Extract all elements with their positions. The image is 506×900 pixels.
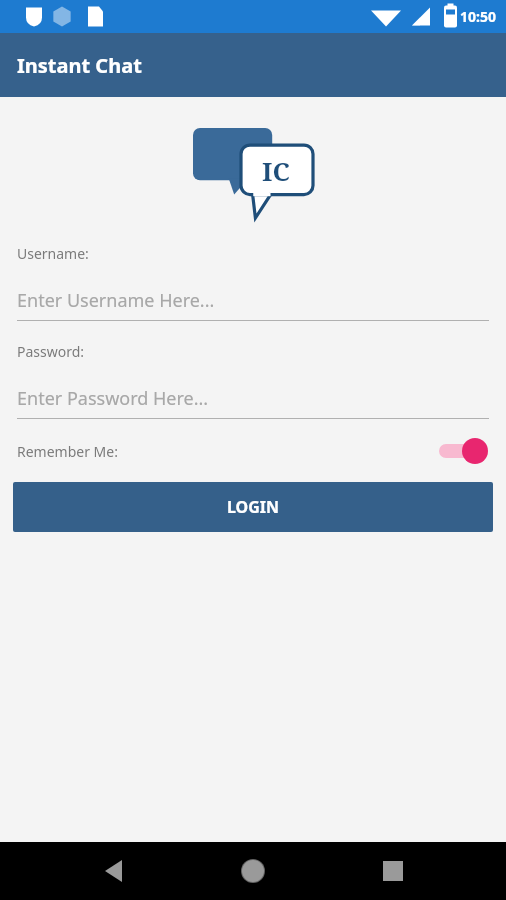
button[interactable]: Enter Password Here... [17, 386, 489, 419]
staticText: Username: [17, 244, 89, 263]
staticText: 10:50 [460, 7, 496, 26]
staticText: IC [262, 153, 290, 188]
staticText: Enter Username Here... [17, 288, 215, 313]
button[interactable]: LOGIN [13, 482, 493, 532]
button[interactable]: Remember Me toggle [437, 436, 489, 466]
staticText: Remember Me: [17, 442, 118, 461]
staticText: Password: [17, 342, 85, 361]
staticText: LOGIN [227, 496, 280, 518]
staticText: Instant Chat [17, 52, 142, 79]
staticText: Enter Password Here... [17, 386, 209, 411]
button[interactable]: Enter Username Here... [17, 288, 489, 321]
